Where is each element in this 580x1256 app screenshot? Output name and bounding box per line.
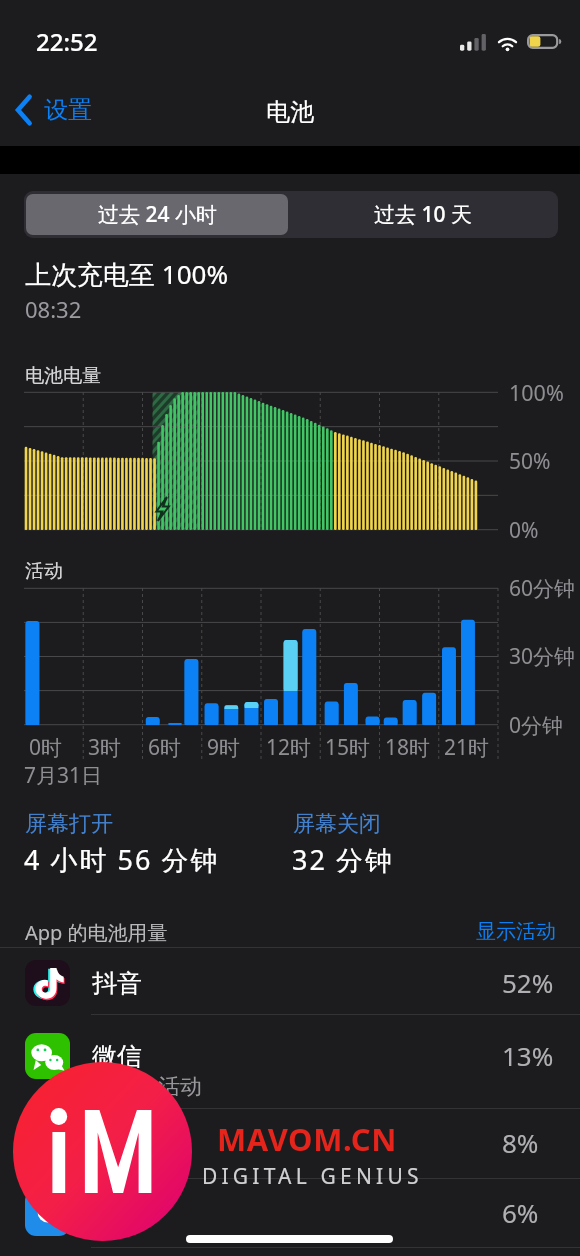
button[interactable]: 过去 10 天 — [290, 194, 556, 235]
staticText: 9时 — [207, 733, 241, 762]
staticText: 抖音 — [92, 968, 142, 999]
staticText: 0分钟 — [509, 711, 564, 740]
staticText: MAVOM.CN — [217, 1118, 398, 1160]
staticText: 100% — [509, 378, 564, 407]
staticText: 12时 — [266, 733, 312, 762]
staticText: 50% — [509, 447, 551, 476]
staticText: 无后台活动 — [92, 1073, 202, 1101]
staticText: 21时 — [444, 733, 490, 762]
staticText: 淘宝 — [92, 1128, 142, 1159]
button[interactable]: 京东 — [0, 1190, 580, 1240]
staticText: 微信 — [92, 1041, 142, 1072]
button[interactable]: 淘宝 — [0, 1120, 580, 1170]
staticText: 18时 — [385, 733, 431, 762]
staticText: 屏幕关闭 — [293, 810, 381, 838]
staticText: 0时 — [29, 733, 63, 762]
staticText: 32 分钟 — [292, 841, 394, 878]
staticText: 过去 24 小时 — [98, 200, 217, 229]
staticText: 过去 10 天 — [374, 200, 472, 229]
button[interactable]: 微信 — [0, 1033, 580, 1087]
staticText: 60分钟 — [509, 574, 576, 603]
staticText: 电池电量 — [25, 364, 101, 388]
staticText: 京东 — [92, 1198, 142, 1229]
staticText: 08:32 — [25, 294, 82, 324]
staticText: 设置 — [44, 95, 92, 125]
staticText: 上次充电至 100% — [25, 256, 228, 292]
staticText: 6时 — [148, 733, 182, 762]
staticText: DIGITAL GENIUS — [202, 1162, 423, 1191]
staticText: 22:52 — [36, 25, 98, 58]
staticText: 13% — [502, 1038, 554, 1073]
staticText: 4 小时 56 分钟 — [24, 841, 220, 878]
staticText: 6% — [502, 1195, 539, 1230]
staticText: 电池 — [266, 97, 314, 127]
button[interactable]: 过去 24 小时 — [26, 194, 288, 235]
staticText: 8% — [502, 1125, 539, 1160]
staticText: 显示活动 — [476, 919, 556, 944]
button[interactable]: 显示活动 — [466, 915, 566, 948]
button[interactable]: 抖音 — [0, 960, 580, 1014]
staticText: 3时 — [88, 733, 122, 762]
staticText: 52% — [502, 965, 554, 1000]
staticText: 0% — [509, 516, 539, 545]
button[interactable]: 设置 — [8, 88, 102, 132]
staticText: App 的电池用量 — [25, 919, 168, 946]
staticText: 7月31日 — [24, 761, 103, 790]
staticText: 30分钟 — [509, 642, 576, 671]
staticText: 15时 — [325, 733, 371, 762]
staticText: 活动 — [25, 559, 63, 583]
staticText: 屏幕打开 — [25, 810, 113, 838]
